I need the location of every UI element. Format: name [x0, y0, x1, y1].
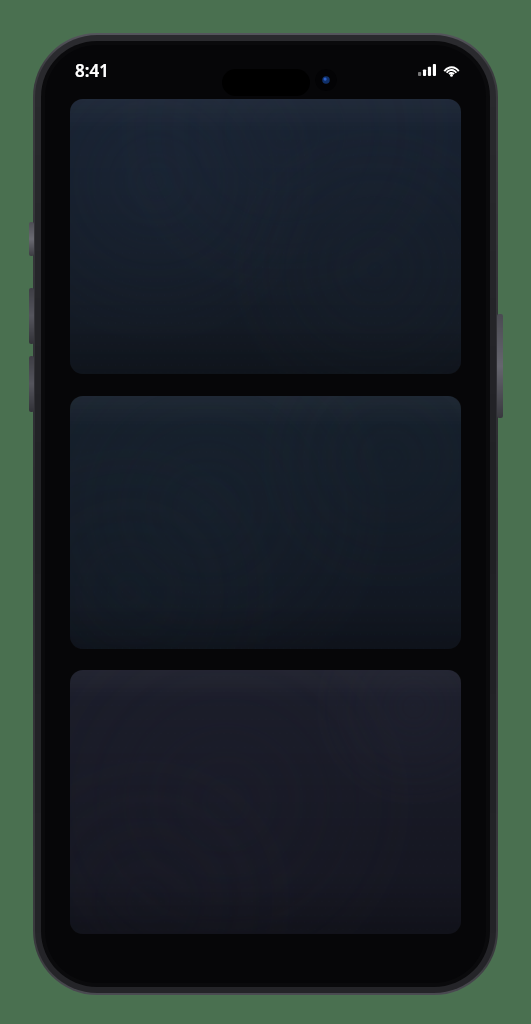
- button[interactable]: [70, 396, 461, 649]
- button[interactable]: [70, 99, 461, 374]
- button[interactable]: Action button: [29, 222, 34, 256]
- staticText: 8:41: [75, 59, 109, 82]
- button[interactable]: [70, 670, 461, 934]
- button[interactable]: Power: [497, 314, 503, 418]
- button[interactable]: Volume up: [29, 288, 34, 344]
- button[interactable]: Volume down: [29, 356, 34, 412]
